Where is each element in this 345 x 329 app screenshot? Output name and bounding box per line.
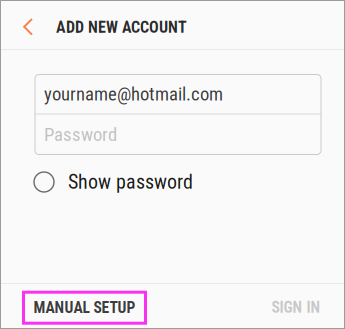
button[interactable]: Back bbox=[15, 12, 41, 42]
staticText: Password bbox=[44, 124, 117, 145]
staticText: ADD NEW ACCOUNT bbox=[56, 18, 187, 37]
button[interactable]: SIGN IN bbox=[268, 291, 324, 324]
staticText: MANUAL SETUP bbox=[33, 299, 135, 317]
staticText: SIGN IN bbox=[271, 298, 320, 317]
staticText: Show password bbox=[68, 170, 193, 194]
staticText: yourname@hotmail.com bbox=[44, 83, 223, 105]
button[interactable]: MANUAL SETUP bbox=[23, 292, 145, 323]
button[interactable]: Show password bbox=[34, 166, 234, 198]
